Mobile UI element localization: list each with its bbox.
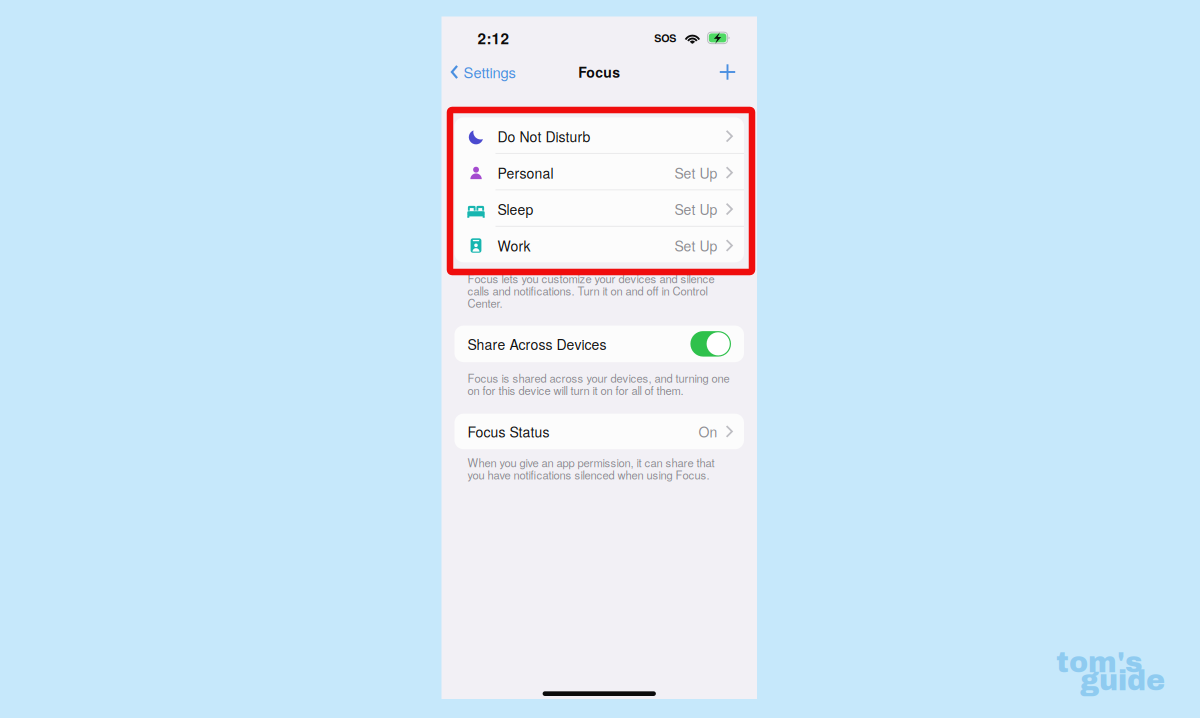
staticText: on for this device will turn it on for a… [467, 382, 683, 398]
staticText: Focus Status [467, 421, 549, 441]
staticText: Personal [497, 163, 553, 183]
staticText: 2:12 [477, 27, 509, 49]
staticText: Focus [578, 62, 620, 82]
staticText: Focus lets you customize your devices an… [467, 270, 714, 286]
button[interactable]: Share Across Devices [454, 326, 744, 362]
staticText: tom's [1056, 647, 1143, 678]
staticText: Set Up [675, 199, 718, 219]
button[interactable]: Sleep [454, 190, 744, 226]
button[interactable]: Work [454, 227, 744, 262]
staticText: Set Up [675, 163, 718, 183]
staticText: guide [1080, 665, 1165, 696]
staticText: On [699, 421, 718, 441]
staticText: Sleep [497, 199, 533, 219]
button[interactable]: Focus Status [454, 414, 744, 449]
staticText: SOS [654, 30, 676, 46]
button[interactable]: Add Focus [719, 60, 757, 84]
staticText: you have notifications silenced when usi… [467, 467, 709, 483]
staticText: Set Up [675, 235, 718, 255]
staticText: Share Across Devices [467, 334, 606, 354]
button[interactable]: Do Not Disturb [454, 117, 744, 153]
staticText: Settings [463, 61, 515, 82]
staticText: Center. [467, 295, 502, 311]
button[interactable]: Personal [454, 154, 744, 189]
staticText: When you give an app permission, it can … [467, 454, 714, 470]
button[interactable]: Settings [441, 60, 515, 84]
staticText: Do Not Disturb [497, 126, 590, 146]
staticText: calls and notifications. Turn it on and … [467, 283, 707, 299]
staticText: Focus is shared across your devices, and… [467, 370, 729, 386]
staticText: Work [497, 235, 530, 255]
